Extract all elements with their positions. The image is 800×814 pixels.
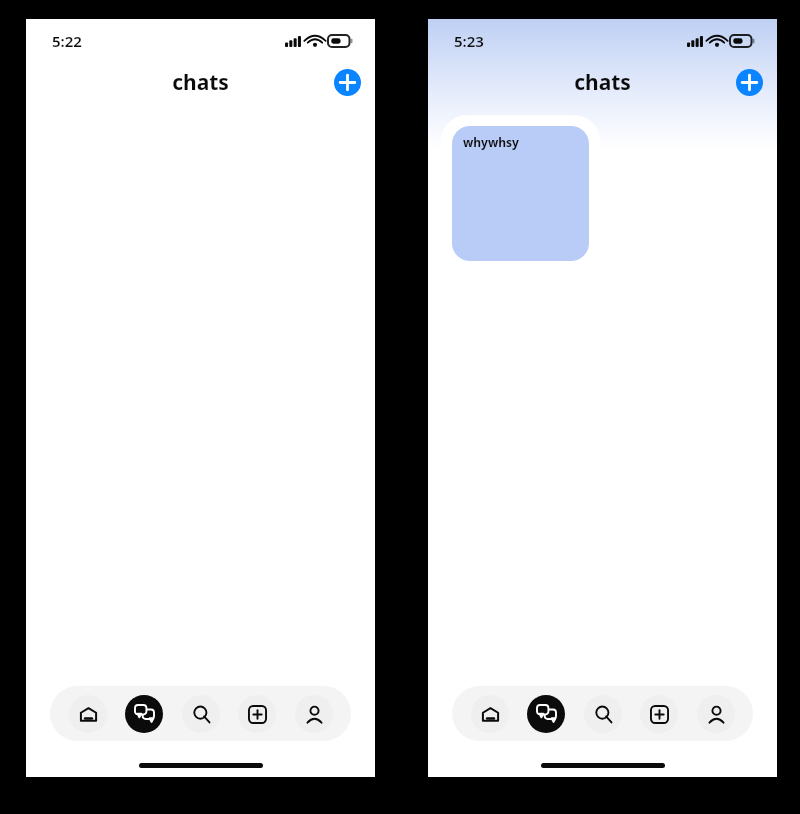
button[interactable]: Profile <box>295 695 333 733</box>
button[interactable]: Search <box>182 695 220 733</box>
staticText: 5:22 <box>52 31 82 51</box>
button[interactable]: New chat <box>736 69 763 96</box>
staticText: chats <box>574 68 631 97</box>
button[interactable]: Search <box>584 695 622 733</box>
button[interactable]: whywhsy <box>452 126 589 261</box>
staticText: whywhsy <box>463 134 519 150</box>
button[interactable]: Create <box>238 695 276 733</box>
button[interactable]: New chat <box>334 69 361 96</box>
button[interactable]: Create <box>640 695 678 733</box>
button[interactable]: Chats <box>125 695 163 733</box>
button[interactable]: Home <box>69 695 107 733</box>
button[interactable]: Profile <box>697 695 735 733</box>
button[interactable]: Chats <box>527 695 565 733</box>
button[interactable]: Home <box>471 695 509 733</box>
staticText: chats <box>172 68 229 97</box>
staticText: 5:23 <box>454 31 484 51</box>
